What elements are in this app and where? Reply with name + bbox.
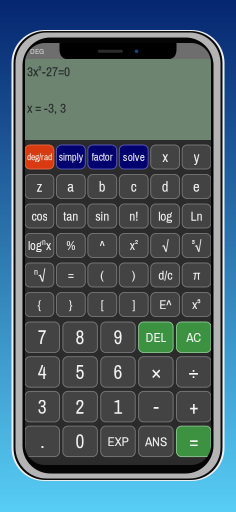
button[interactable]: 7: [25, 322, 59, 352]
button[interactable]: d: [151, 174, 179, 198]
staticText: E^: [159, 295, 171, 313]
staticText: +: [189, 394, 198, 420]
button[interactable]: -: [139, 391, 173, 422]
staticText: logⁿx: [28, 237, 51, 254]
button[interactable]: ⁿ√: [25, 263, 54, 287]
button[interactable]: }: [56, 292, 85, 316]
button[interactable]: log: [151, 204, 179, 228]
staticText: c: [131, 177, 137, 196]
button[interactable]: E^: [151, 292, 179, 316]
staticText: ×: [151, 359, 160, 385]
staticText: π: [193, 266, 200, 284]
staticText: z: [36, 177, 42, 196]
staticText: tan: [63, 207, 78, 225]
button[interactable]: 8: [63, 322, 97, 352]
staticText: .: [40, 428, 44, 454]
staticText: 7: [38, 324, 47, 350]
staticText: e: [193, 177, 200, 196]
staticText: factor: [92, 150, 113, 164]
staticText: =: [189, 428, 198, 454]
button[interactable]: tan: [56, 204, 85, 228]
button[interactable]: x: [151, 145, 179, 169]
button[interactable]: {: [25, 292, 54, 316]
button[interactable]: factor: [88, 145, 117, 169]
staticText: d/c: [158, 266, 172, 284]
staticText: [: [101, 295, 104, 313]
button[interactable]: 4: [25, 357, 59, 387]
button[interactable]: logⁿx: [25, 233, 54, 257]
button[interactable]: z: [25, 174, 54, 198]
staticText: ⁿ√: [34, 266, 45, 284]
staticText: 0: [76, 428, 85, 454]
button[interactable]: deg/rad: [25, 145, 54, 169]
button[interactable]: ÷: [176, 357, 211, 387]
button[interactable]: 3: [25, 391, 59, 422]
staticText: x²: [130, 237, 138, 254]
staticText: 9: [113, 324, 122, 350]
button[interactable]: d/c: [151, 263, 179, 287]
button[interactable]: AC: [176, 322, 211, 352]
button[interactable]: 1: [101, 391, 135, 422]
button[interactable]: n!: [119, 204, 148, 228]
staticText: ANS: [145, 432, 167, 450]
button[interactable]: [: [88, 292, 117, 316]
button[interactable]: %: [56, 233, 85, 257]
button[interactable]: 0: [63, 426, 97, 457]
staticText: EXP: [107, 432, 128, 450]
staticText: 1: [113, 394, 122, 420]
button[interactable]: (: [88, 263, 117, 287]
button[interactable]: cos: [25, 204, 54, 228]
button[interactable]: simply: [56, 145, 85, 169]
button[interactable]: +: [176, 391, 211, 422]
staticText: ]: [132, 295, 135, 313]
staticText: deg/rad: [27, 151, 52, 163]
button[interactable]: Ln: [182, 204, 211, 228]
button[interactable]: c: [119, 174, 148, 198]
staticText: =: [68, 266, 74, 284]
button[interactable]: x³: [182, 292, 211, 316]
button[interactable]: .: [25, 426, 59, 457]
staticText: n!: [129, 207, 138, 225]
button[interactable]: EXP: [101, 426, 135, 457]
staticText: {: [37, 295, 41, 313]
staticText: 2: [76, 394, 85, 420]
button[interactable]: √: [151, 233, 179, 257]
button[interactable]: a: [56, 174, 85, 198]
button[interactable]: π: [182, 263, 211, 287]
button[interactable]: 2: [63, 391, 97, 422]
button[interactable]: sin: [88, 204, 117, 228]
staticText: DEL: [145, 328, 166, 346]
staticText: ): [132, 266, 136, 284]
staticText: 5: [76, 359, 85, 385]
button[interactable]: ³√: [182, 233, 211, 257]
staticText: x = -3, 3: [27, 99, 66, 117]
staticText: AC: [186, 328, 201, 346]
staticText: ÷: [188, 359, 199, 385]
button[interactable]: ]: [119, 292, 148, 316]
button[interactable]: =: [56, 263, 85, 287]
staticText: ³√: [192, 237, 202, 254]
button[interactable]: b: [88, 174, 117, 198]
staticText: log: [158, 207, 172, 225]
button[interactable]: 5: [63, 357, 97, 387]
button[interactable]: e: [182, 174, 211, 198]
button[interactable]: 9: [101, 322, 135, 352]
staticText: }: [69, 295, 73, 313]
button[interactable]: =: [176, 426, 211, 457]
staticText: simply: [59, 150, 83, 164]
staticText: 3: [38, 394, 47, 420]
button[interactable]: 6: [101, 357, 135, 387]
staticText: solve: [123, 149, 145, 165]
staticText: 8: [76, 324, 85, 350]
button[interactable]: DEL: [139, 322, 173, 352]
button[interactable]: ): [119, 263, 148, 287]
button[interactable]: ANS: [139, 426, 173, 457]
staticText: x³: [192, 295, 201, 313]
button[interactable]: ×: [139, 357, 173, 387]
button[interactable]: solve: [119, 145, 148, 169]
button[interactable]: ^: [88, 233, 117, 257]
button[interactable]: x²: [119, 233, 148, 257]
button[interactable]: y: [182, 145, 211, 169]
staticText: ^: [100, 237, 105, 254]
staticText: 6: [113, 359, 122, 385]
